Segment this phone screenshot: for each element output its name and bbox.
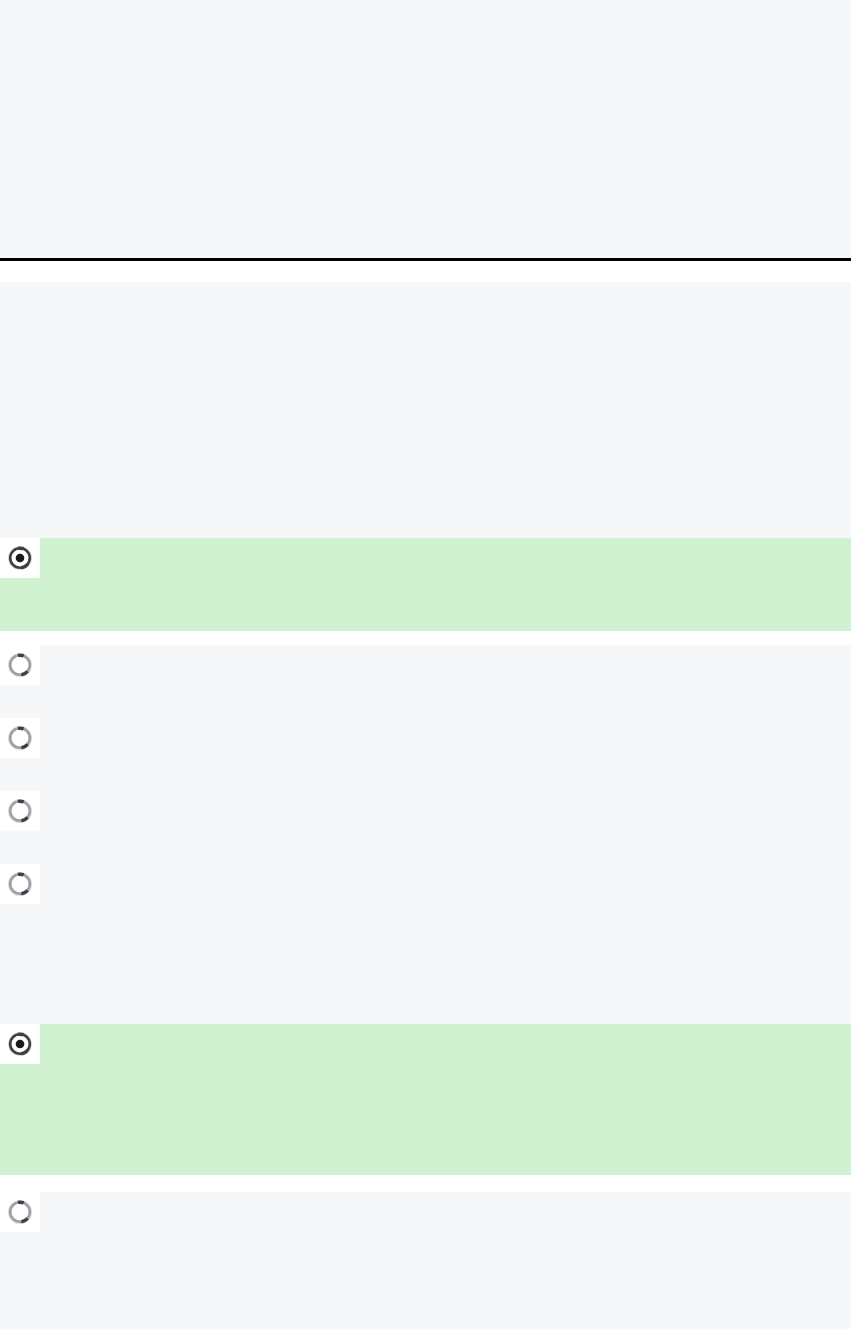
button[interactable]: Option 5 (0, 864, 851, 904)
button[interactable]: Option 4 (0, 791, 40, 831)
button[interactable]: Option 7 (0, 1192, 40, 1232)
button[interactable]: Option 5 (0, 864, 40, 904)
button[interactable]: Selected option 1 (0, 538, 40, 578)
button[interactable]: Option 2 (0, 645, 40, 685)
button[interactable]: Selected option 6 (0, 1024, 851, 1175)
button[interactable]: Option 3 (0, 718, 851, 758)
button[interactable]: Selected option 6 (0, 1024, 40, 1064)
button[interactable]: Option 2 (0, 645, 851, 685)
button[interactable]: Option 4 (0, 791, 851, 831)
button[interactable]: Selected option 1 (0, 538, 851, 631)
button[interactable]: Option 3 (0, 718, 40, 758)
button[interactable]: Option 7 (0, 1192, 851, 1232)
